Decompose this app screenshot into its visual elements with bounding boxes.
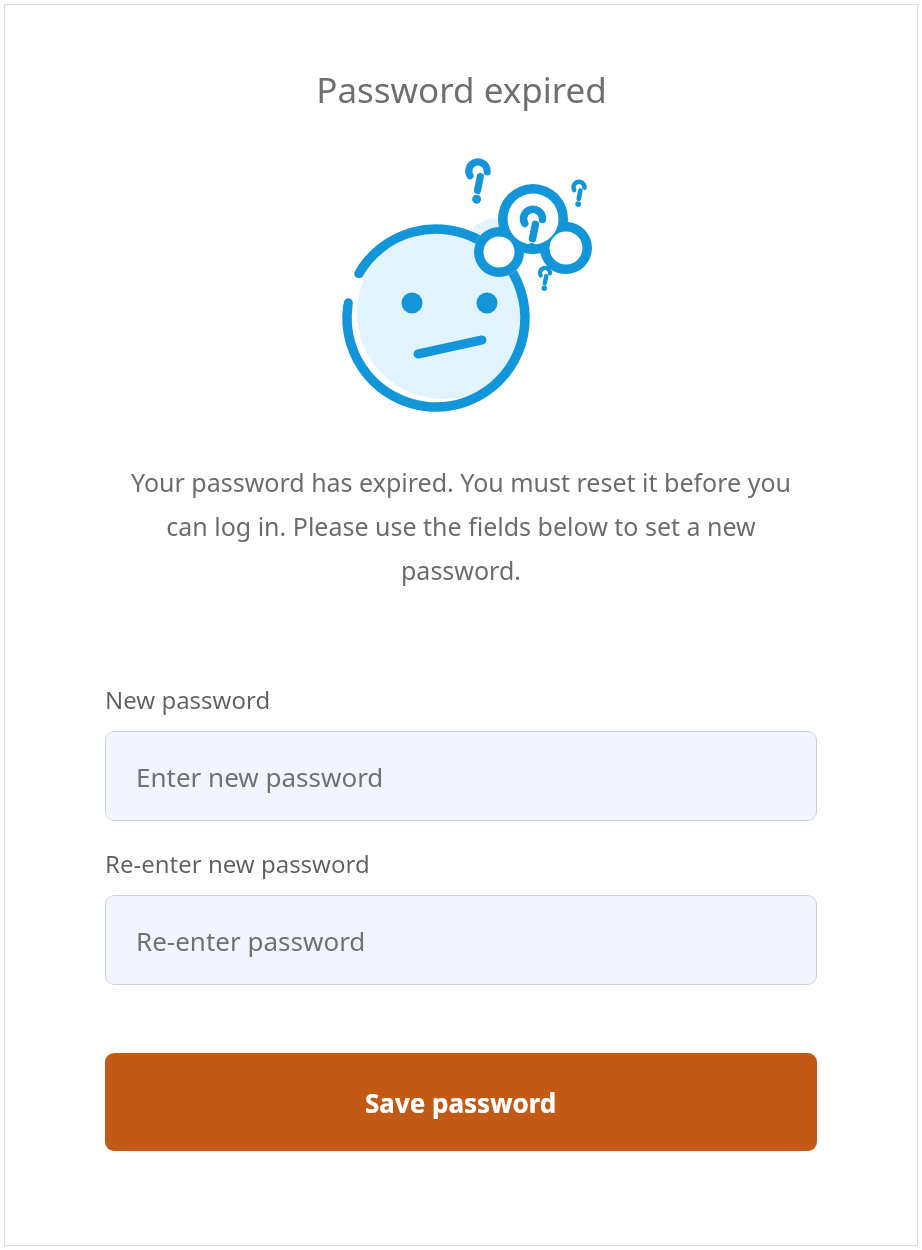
staticText: Re-enter password xyxy=(136,923,366,958)
button[interactable]: Re-enter password xyxy=(105,895,817,985)
staticText: New password xyxy=(105,683,271,716)
staticText: Save password xyxy=(365,1085,557,1120)
staticText: Re-enter new password xyxy=(105,847,370,880)
button[interactable]: Save password xyxy=(105,1053,817,1151)
staticText: Password expired xyxy=(316,66,607,114)
staticText: Enter new password xyxy=(136,759,384,794)
staticText: Your password has expired. You must rese… xyxy=(131,465,791,587)
button[interactable]: Enter new password xyxy=(105,731,817,821)
